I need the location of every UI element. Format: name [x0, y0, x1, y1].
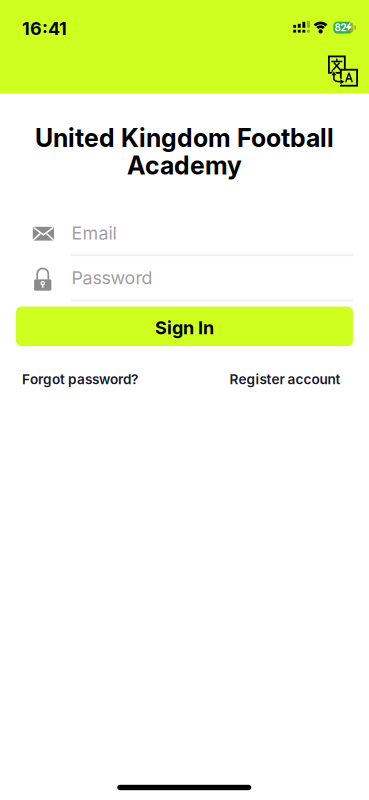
button[interactable]: Forgot password?	[22, 371, 138, 388]
staticText: United Kingdom Football	[35, 123, 334, 153]
staticText: 16:41	[22, 18, 67, 39]
staticText: Password	[71, 267, 152, 288]
staticText: Email	[71, 222, 116, 244]
button[interactable]: Sign In	[16, 306, 353, 346]
button[interactable]: Password	[25, 266, 353, 302]
button[interactable]	[327, 54, 358, 87]
button[interactable]: Register account	[229, 371, 340, 388]
staticText: Academy	[127, 150, 242, 180]
staticText: Sign In	[155, 317, 214, 339]
staticText: 82	[334, 22, 346, 33]
staticText: Forgot password?	[22, 371, 138, 388]
button[interactable]: Email	[25, 221, 353, 257]
staticText: Register account	[229, 371, 340, 388]
